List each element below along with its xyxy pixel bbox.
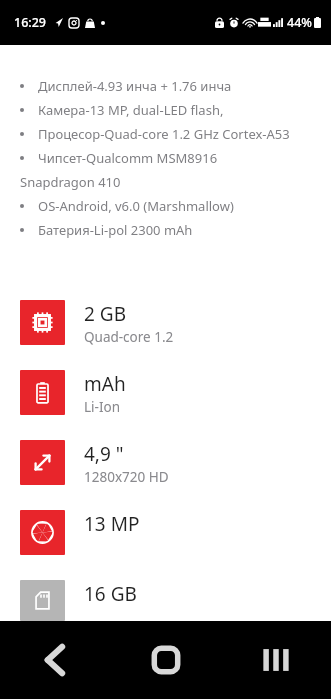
staticText: Процесор-Quad-core 1.2 GHz Cortex-A53 <box>38 125 290 143</box>
other: Storage <box>20 580 65 621</box>
other: CPU <box>20 300 65 345</box>
button[interactable]: Camera <box>0 510 331 580</box>
button[interactable]: Recents <box>221 621 331 699</box>
staticText: 1280x720 HD <box>84 468 169 486</box>
staticText: Дисплей-4.93 инча + 1.76 инча <box>38 77 232 95</box>
staticText: 16 GB <box>84 581 137 607</box>
staticText: Snapdragon 410 <box>20 173 121 191</box>
staticText: OS-Android, v6.0 (Marshmallow) <box>38 197 234 215</box>
staticText: mAh <box>84 371 126 397</box>
staticText: 16:29 <box>14 14 47 31</box>
button[interactable]: Back <box>0 621 111 699</box>
staticText: Чипсет-Qualcomm MSM8916 <box>38 149 218 167</box>
button[interactable]: Home <box>111 621 221 699</box>
other: Camera <box>20 510 65 555</box>
button[interactable]: Storage <box>0 580 331 621</box>
other: Battery <box>20 370 65 415</box>
button[interactable]: Display size <box>0 440 331 510</box>
staticText: 4,9 " <box>84 441 124 467</box>
staticText: 13 MP <box>84 511 140 537</box>
staticText: Quad-core 1.2 <box>84 328 174 346</box>
staticText: Li-Ion <box>84 398 120 416</box>
button[interactable]: Battery <box>0 370 331 440</box>
button[interactable]: CPU <box>0 300 331 370</box>
staticText: 44% <box>287 14 312 31</box>
other: Display size <box>20 440 65 485</box>
staticText: 2 GB <box>84 301 126 327</box>
staticText: Батерия-Li-pol 2300 mAh <box>38 221 193 239</box>
staticText: Камера-13 MP, dual-LED flash, <box>38 101 224 119</box>
